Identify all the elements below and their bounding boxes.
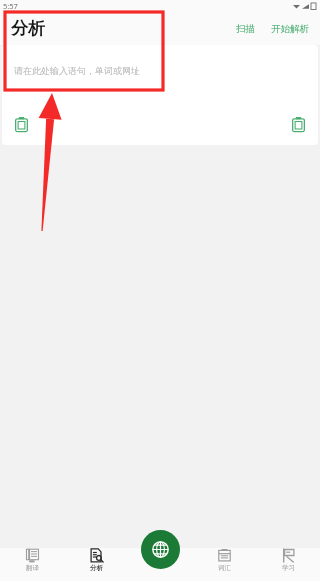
button[interactable]: Paste from clipboard [10, 112, 33, 137]
staticText: 分析 [11, 18, 45, 39]
button[interactable]: 请在此处输入语句，单词或网址 [2, 45, 318, 103]
button[interactable]: Web browser [141, 530, 180, 569]
staticText: 扫描 [236, 23, 255, 35]
button[interactable]: 扫描 [228, 17, 263, 41]
staticText: 5:57 [3, 1, 18, 11]
staticText: 分析 [90, 564, 103, 572]
button[interactable]: 词汇 [192, 548, 256, 572]
staticText: 学习 [282, 564, 295, 572]
button[interactable]: Copy to clipboard [287, 112, 310, 137]
staticText: 词汇 [218, 564, 231, 572]
button[interactable]: 学习 [256, 548, 320, 572]
staticText: 开始解析 [271, 23, 309, 35]
button[interactable]: 开始解析 [263, 17, 320, 41]
button[interactable]: 分析 [64, 548, 128, 572]
staticText: 翻译 [26, 564, 39, 572]
button[interactable]: 翻译 [0, 548, 64, 572]
staticText: 请在此处输入语句，单词或网址 [14, 65, 140, 76]
